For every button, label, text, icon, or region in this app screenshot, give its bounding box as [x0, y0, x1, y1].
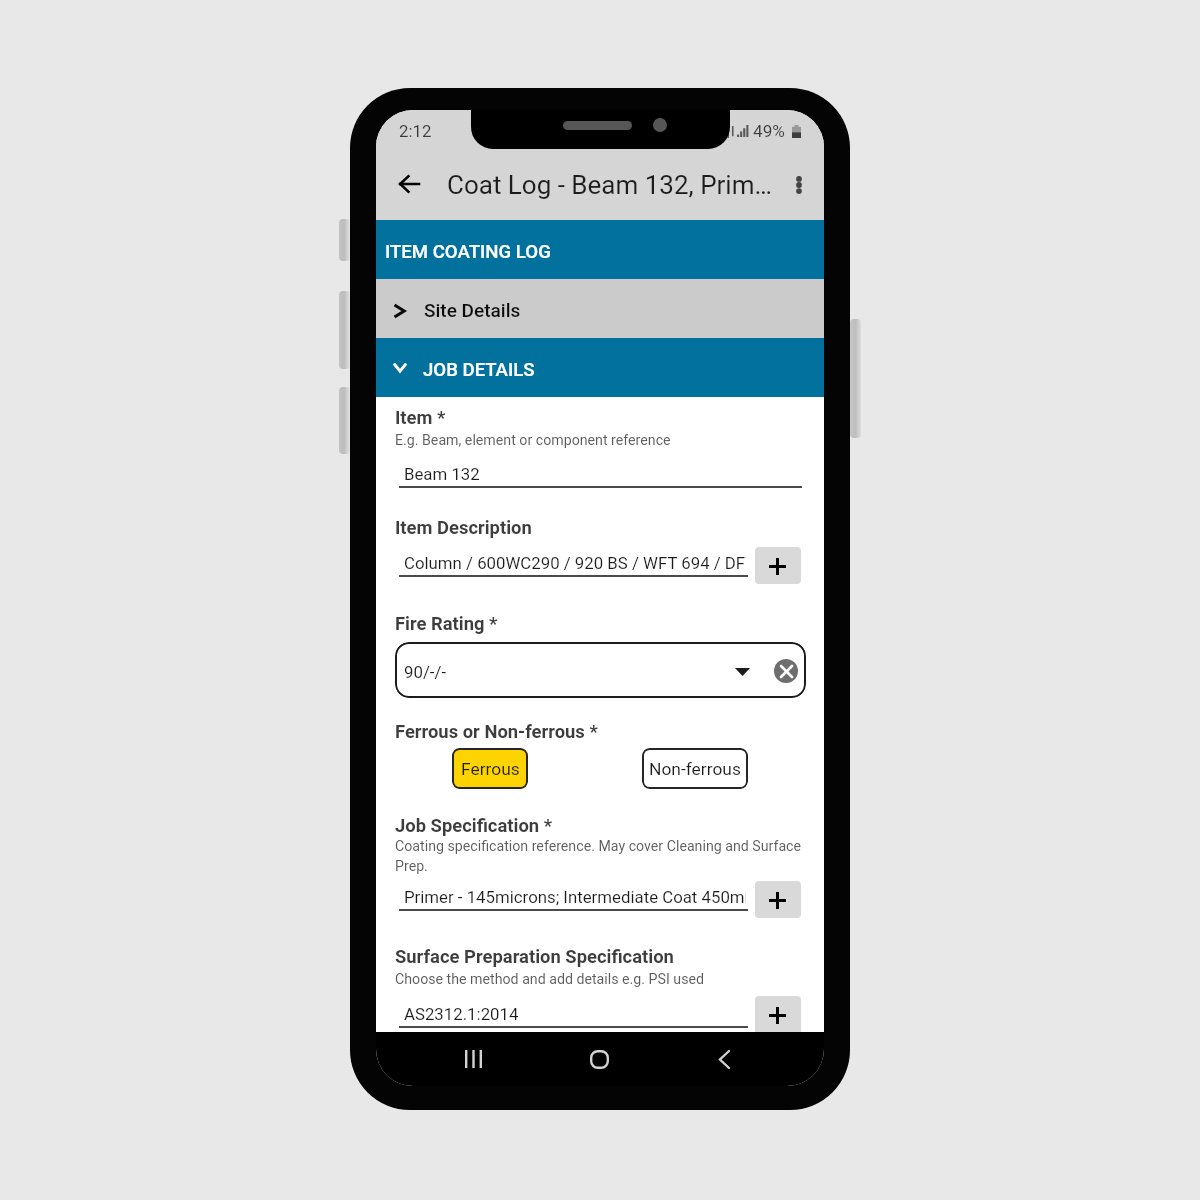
- button[interactable]: JOB DETAILS: [376, 338, 824, 397]
- staticText: Ferrous or Non-ferrous *: [395, 721, 598, 743]
- button[interactable]: AS2312.1:2014: [399, 998, 746, 1030]
- staticText: Primer - 145microns; Intermediate Coat 4…: [404, 887, 746, 907]
- staticText: Choose the method and add details e.g. P…: [395, 971, 704, 988]
- button[interactable]: Beam 132: [399, 458, 779, 490]
- staticText: E.g. Beam, element or component referenc…: [395, 432, 671, 449]
- staticText: 90/-/-: [404, 662, 447, 682]
- staticText: Site Details: [424, 299, 521, 321]
- button[interactable]: Site Details: [376, 279, 824, 338]
- button[interactable]: Column / 600WC290 / 920 BS / WFT 694 / D…: [399, 547, 746, 579]
- staticText: Column / 600WC290 / 920 BS / WFT 694 / D…: [404, 553, 746, 573]
- button[interactable]: ITEM COATING LOG: [376, 220, 824, 279]
- staticText: Fire Rating *: [395, 613, 498, 635]
- staticText: Coating specification reference. May cov…: [395, 838, 802, 855]
- button[interactable]: Primer - 145microns; Intermediate Coat 4…: [399, 881, 746, 913]
- staticText: Prep.: [395, 858, 428, 875]
- button[interactable]: Recent apps: [445, 1032, 501, 1086]
- staticText: Surface Preparation Specification: [395, 946, 674, 968]
- staticText: Job Specification *: [395, 815, 553, 837]
- staticText: Coat Log - Beam 132, Prim…: [447, 170, 772, 200]
- staticText: Item Description: [395, 517, 532, 539]
- staticText: JOB DETAILS: [423, 359, 535, 381]
- button[interactable]: More options: [776, 162, 821, 207]
- button[interactable]: Home: [571, 1032, 627, 1086]
- staticText: 49%: [753, 121, 785, 141]
- staticText: Non-ferrous: [649, 759, 741, 779]
- button[interactable]: Non-ferrous: [642, 748, 748, 789]
- staticText: Item *: [395, 407, 446, 429]
- staticText: 2:12: [399, 121, 432, 141]
- button[interactable]: Navigate up: [385, 160, 433, 208]
- button[interactable]: Add: [755, 881, 801, 918]
- button[interactable]: Clear: [774, 659, 798, 683]
- staticText: Beam 132: [404, 464, 779, 484]
- button[interactable]: Add: [755, 996, 801, 1038]
- button[interactable]: Add: [755, 547, 801, 584]
- staticText: ITEM COATING LOG: [385, 241, 551, 263]
- button[interactable]: Ferrous: [452, 748, 528, 789]
- button[interactable]: Back: [696, 1032, 752, 1086]
- staticText: AS2312.1:2014: [404, 1004, 746, 1024]
- button[interactable]: 90/-/-: [395, 642, 806, 698]
- staticText: Ferrous: [461, 759, 520, 779]
